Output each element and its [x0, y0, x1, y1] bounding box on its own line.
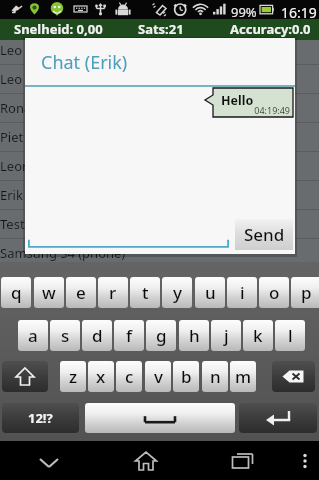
button[interactable]: r — [98, 277, 128, 308]
staticText: 99% — [231, 3, 257, 21]
staticText: d — [92, 324, 103, 347]
button[interactable]: y — [162, 277, 192, 308]
button[interactable]: Leo — [0, 35, 319, 64]
staticText: Leo — [0, 70, 23, 88]
button[interactable]: Hide keyboard — [0, 441, 97, 480]
button[interactable]: Enter — [239, 403, 317, 433]
button[interactable]: f — [114, 320, 144, 351]
button[interactable]: d — [82, 320, 112, 351]
staticText: Snelheid: 0,00 — [14, 20, 103, 38]
staticText: q — [11, 281, 22, 304]
staticText: Leon — [0, 157, 31, 175]
button[interactable]: m — [230, 361, 256, 392]
button[interactable]: j — [211, 320, 241, 351]
staticText: x — [96, 365, 106, 388]
button[interactable]: k — [243, 320, 273, 351]
button[interactable]: n — [202, 361, 228, 392]
button[interactable]: c — [116, 361, 142, 392]
staticText: c — [125, 365, 134, 388]
button[interactable]: x — [88, 361, 114, 392]
button[interactable]: Samsung S4 (phone) — [0, 238, 319, 267]
staticText: Erik — [0, 186, 23, 204]
button[interactable]: p — [291, 277, 319, 308]
staticText: Piet — [0, 128, 24, 146]
button[interactable]: b — [173, 361, 199, 392]
staticText: Chat (Erik) — [41, 50, 128, 75]
button[interactable]: Backspace — [272, 361, 315, 392]
staticText: z — [69, 365, 78, 388]
staticText: n — [210, 365, 221, 388]
button[interactable]: Space — [85, 403, 235, 433]
button[interactable]: Leo — [0, 64, 319, 93]
staticText: k — [253, 324, 263, 347]
staticText: p — [301, 281, 312, 304]
staticText: i — [240, 281, 245, 304]
button[interactable]: Send — [235, 219, 293, 250]
button[interactable]: Erik — [0, 180, 319, 209]
button[interactable]: u — [195, 277, 225, 308]
button[interactable]: Shift — [2, 361, 48, 392]
staticText: j — [224, 324, 229, 347]
staticText: Accuracy:0.0 — [230, 20, 311, 38]
button[interactable]: Leon — [0, 151, 319, 180]
button[interactable]: e — [66, 277, 96, 308]
staticText: 04:19:49 — [243, 104, 290, 116]
staticText: h — [189, 324, 200, 347]
button[interactable]: Recent apps — [194, 441, 291, 480]
staticText: s — [61, 324, 70, 347]
staticText: u — [205, 281, 216, 304]
button[interactable] — [28, 238, 229, 250]
button[interactable]: Test — [0, 209, 319, 238]
staticText: a — [28, 324, 38, 347]
staticText: t — [142, 281, 149, 304]
button[interactable]: o — [259, 277, 289, 308]
button[interactable]: v — [145, 361, 171, 392]
button[interactable]: w — [34, 277, 64, 308]
staticText: Ronald — [0, 99, 43, 117]
button[interactable]: h — [179, 320, 209, 351]
staticText: Test — [0, 215, 25, 233]
staticText: b — [181, 365, 192, 388]
button[interactable]: More options — [291, 441, 319, 480]
button[interactable]: i — [227, 277, 257, 308]
staticText: Send — [244, 223, 285, 246]
button[interactable]: Ronald — [0, 93, 319, 122]
button[interactable]: Home — [97, 441, 194, 480]
staticText: Hello — [221, 92, 254, 109]
button[interactable]: 12!? — [2, 403, 79, 433]
staticText: l — [288, 324, 293, 347]
button[interactable]: Piet — [0, 122, 319, 151]
staticText: 12!? — [28, 409, 53, 427]
button[interactable]: z — [60, 361, 86, 392]
button[interactable]: a — [18, 320, 48, 351]
staticText: m — [235, 365, 252, 388]
staticText: y — [173, 281, 182, 304]
staticText: g — [156, 324, 167, 347]
staticText: Leo — [0, 41, 23, 59]
staticText: 16:19 — [281, 3, 317, 22]
staticText: o — [269, 281, 280, 304]
button[interactable]: t — [130, 277, 160, 308]
staticText: r — [109, 281, 117, 304]
staticText: w — [42, 281, 56, 304]
button[interactable] — [85, 403, 235, 433]
button[interactable]: l — [275, 320, 305, 351]
button[interactable]: q — [1, 277, 31, 308]
staticText: e — [76, 281, 86, 304]
button[interactable]: g — [146, 320, 176, 351]
staticText: Samsung S4 (phone) — [0, 244, 126, 262]
button[interactable]: s — [50, 320, 80, 351]
staticText: f — [126, 324, 133, 347]
staticText: v — [154, 365, 163, 388]
staticText: Sats:21 — [138, 20, 184, 38]
